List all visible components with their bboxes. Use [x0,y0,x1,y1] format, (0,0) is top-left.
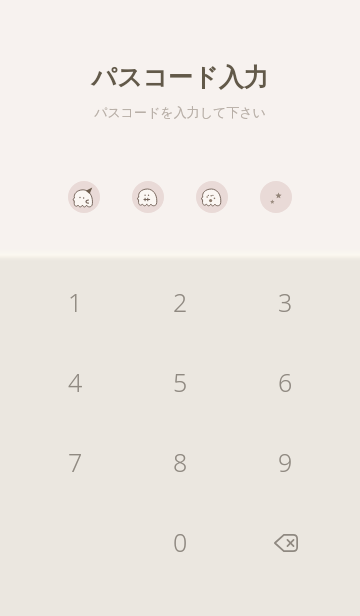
staticText: 4 [68,365,83,399]
button[interactable]: 6 [233,342,338,422]
staticText: 0 [173,525,188,559]
staticText: 2 [173,285,188,319]
button[interactable]: 3 [233,262,338,342]
staticText: 6 [278,365,293,399]
button[interactable]: 9 [233,422,338,502]
button[interactable]: 4 [22,342,128,422]
staticText: 5 [173,365,188,399]
button[interactable]: 8 [128,422,233,502]
staticText: パスコードを入力して下さい [0,104,360,120]
staticText: 7 [68,445,83,479]
staticText: 1 [68,285,83,319]
button[interactable]: 2 [128,262,233,342]
staticText: パスコード入力 [0,62,360,93]
button[interactable]: Delete [233,502,338,582]
staticText: 3 [278,285,293,319]
button[interactable]: 1 [22,262,128,342]
button[interactable]: 5 [128,342,233,422]
other: Passcode: 3 of 4 digits entered [0,181,360,213]
other: Delete [274,534,298,552]
button[interactable]: 0 [128,502,233,582]
staticText: 9 [278,445,293,479]
staticText: 8 [173,445,188,479]
button[interactable]: 7 [22,422,128,502]
